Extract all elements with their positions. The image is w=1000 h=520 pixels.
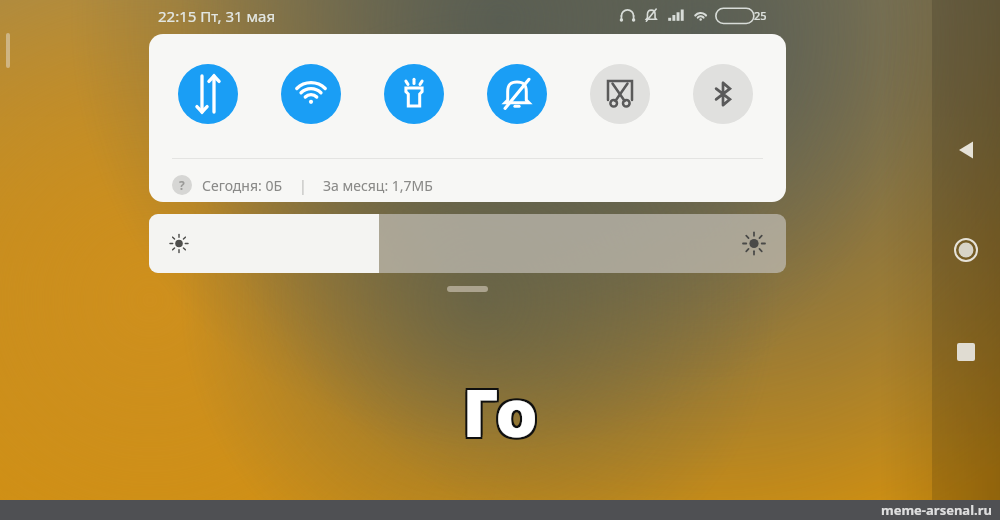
staticText: Го [402, 368, 602, 458]
staticText: Го [402, 366, 602, 456]
staticText: 22:15 Пт, 31 мая [158, 6, 276, 26]
button[interactable]: ? [172, 170, 433, 200]
button[interactable]: Mobile data [178, 64, 238, 124]
button[interactable]: Home [948, 232, 984, 268]
staticText: 25 [754, 8, 767, 23]
staticText: Го [398, 364, 598, 454]
button[interactable]: Silent mode [487, 64, 547, 124]
button[interactable]: Bluetooth [693, 64, 753, 124]
button[interactable]: Back [948, 132, 984, 168]
staticText: Го [402, 364, 602, 454]
staticText: | [299, 176, 307, 195]
staticText: Го [398, 368, 598, 458]
staticText: За месяц: 1,7МБ [323, 176, 433, 195]
staticText: Го [400, 368, 600, 458]
staticText: Сегодня: 0Б [202, 176, 283, 195]
button[interactable]: Flashlight [384, 64, 444, 124]
staticText: Го [400, 364, 600, 454]
button[interactable]: Recent apps [948, 334, 984, 370]
staticText: Го [400, 366, 600, 456]
button[interactable]: Wi-Fi [281, 64, 341, 124]
button[interactable]: Brightness [149, 214, 786, 273]
staticText: ? [179, 177, 185, 193]
staticText: meme-arsenal.ru [881, 501, 992, 519]
staticText: Го [398, 366, 598, 456]
button[interactable]: Screenshot [590, 64, 650, 124]
